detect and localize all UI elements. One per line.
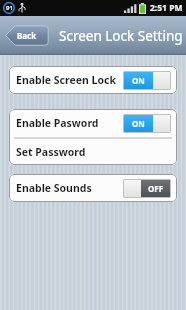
button[interactable]: Back [5,25,49,46]
staticText: ON [132,118,145,129]
staticText: ON [132,75,145,86]
button[interactable]: On [124,72,170,89]
button[interactable]: Set Password [9,139,177,165]
staticText: Set Password [16,145,86,159]
staticText: Enable Pasword [16,116,99,130]
button[interactable]: Enable Pasword [9,109,177,137]
staticText: Back [17,30,37,41]
button[interactable]: On [124,115,170,132]
button[interactable]: Off [124,180,170,197]
button[interactable]: Enable Sounds [9,174,177,202]
staticText: 2:51 PM [150,2,183,14]
staticText: OFF [148,183,164,194]
staticText: Screen Lock Setting [59,27,183,45]
staticText: Enable Screen Lock [16,73,116,87]
staticText: Enable Sounds [16,181,92,195]
staticText: 91 [6,4,13,12]
button[interactable]: Enable Screen Lock [9,66,177,94]
